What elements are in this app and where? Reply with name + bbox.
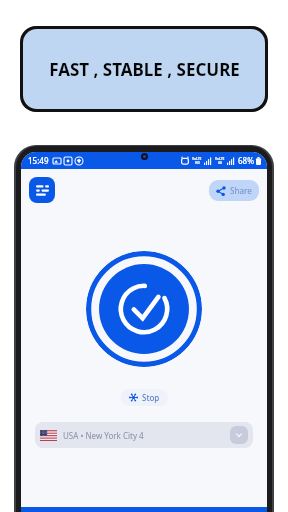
staticText: 4G xyxy=(218,161,223,165)
staticText: VoLTE xyxy=(192,157,202,161)
button[interactable]: Share xyxy=(209,180,259,201)
staticText: HD xyxy=(195,161,200,165)
staticText: VoLTE xyxy=(215,157,225,161)
staticText: Stop xyxy=(142,392,160,403)
button[interactable]: Connect xyxy=(86,251,202,367)
staticText: 15:49 xyxy=(28,155,49,166)
staticText: FAST , STABLE , SECURE xyxy=(49,58,240,81)
staticText: Share xyxy=(230,185,252,196)
button[interactable]: Menu xyxy=(29,177,55,203)
button[interactable]: USA • New York City 4 xyxy=(35,422,253,448)
staticText: USA • New York City 4 xyxy=(63,430,144,441)
button[interactable]: Stop xyxy=(121,389,168,406)
staticText: 68% xyxy=(238,155,254,166)
